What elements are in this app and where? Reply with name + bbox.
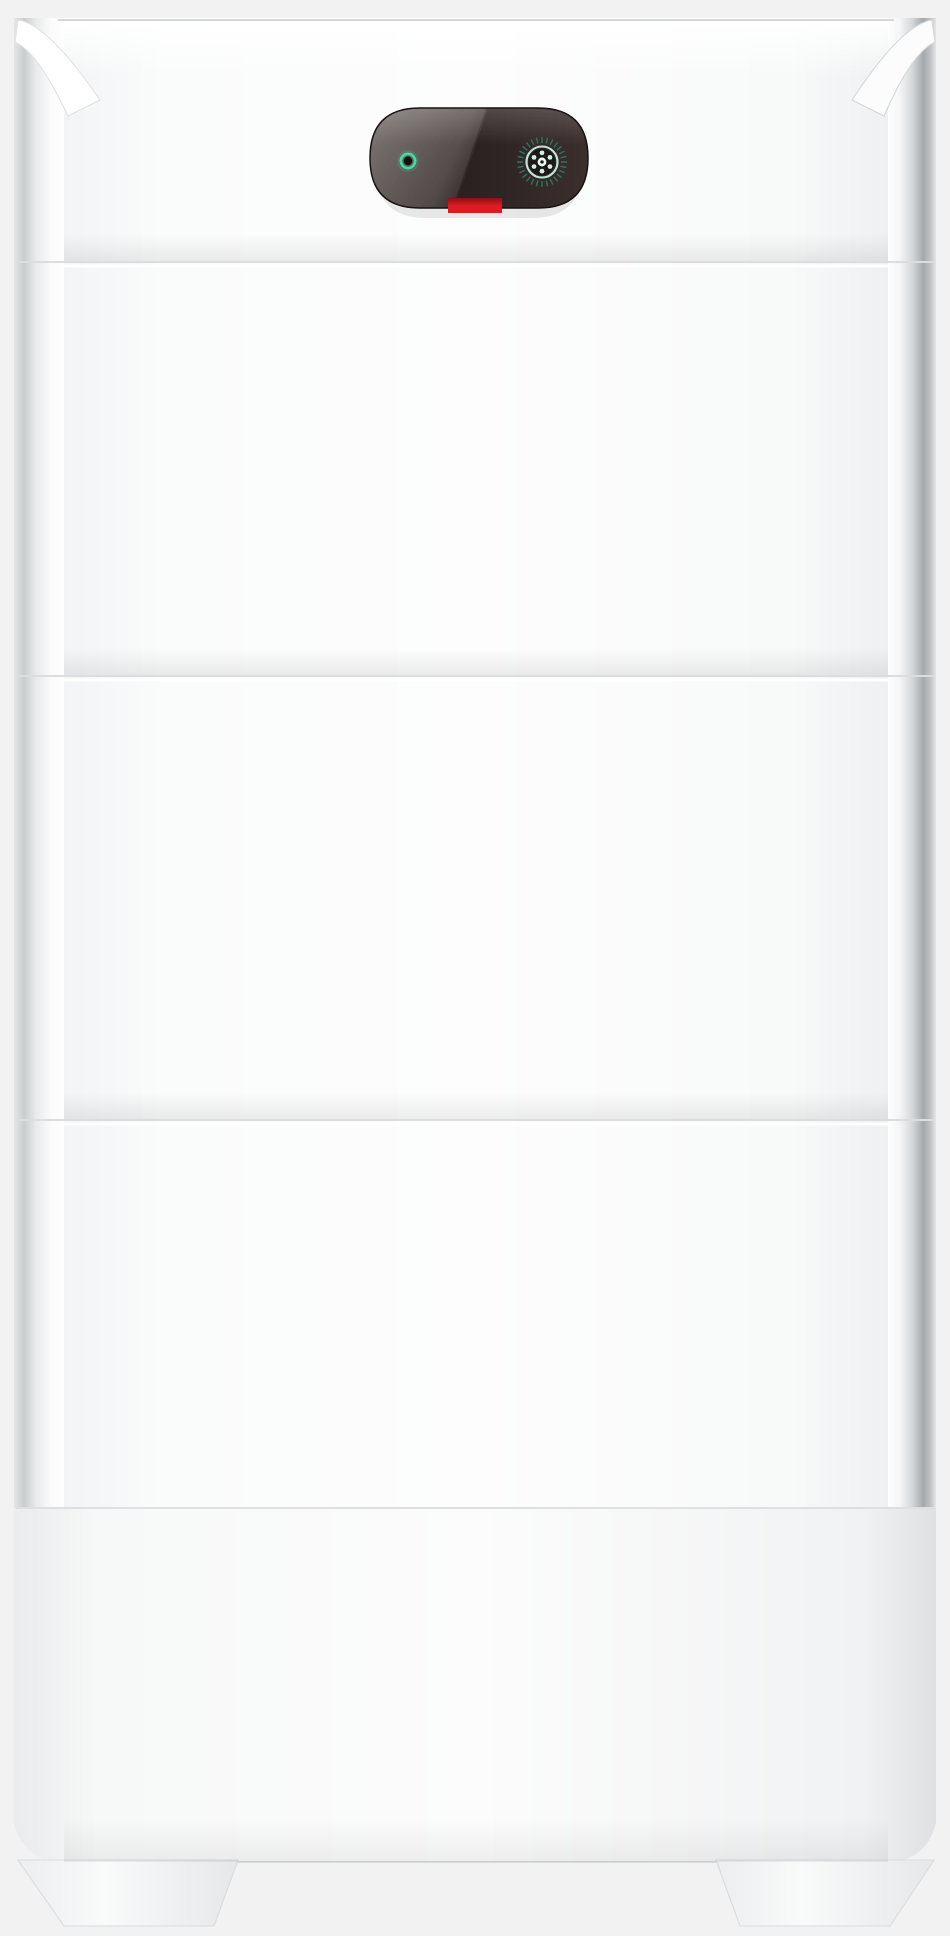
button[interactable]: Stacked home battery storage unit [0, 0, 950, 1936]
